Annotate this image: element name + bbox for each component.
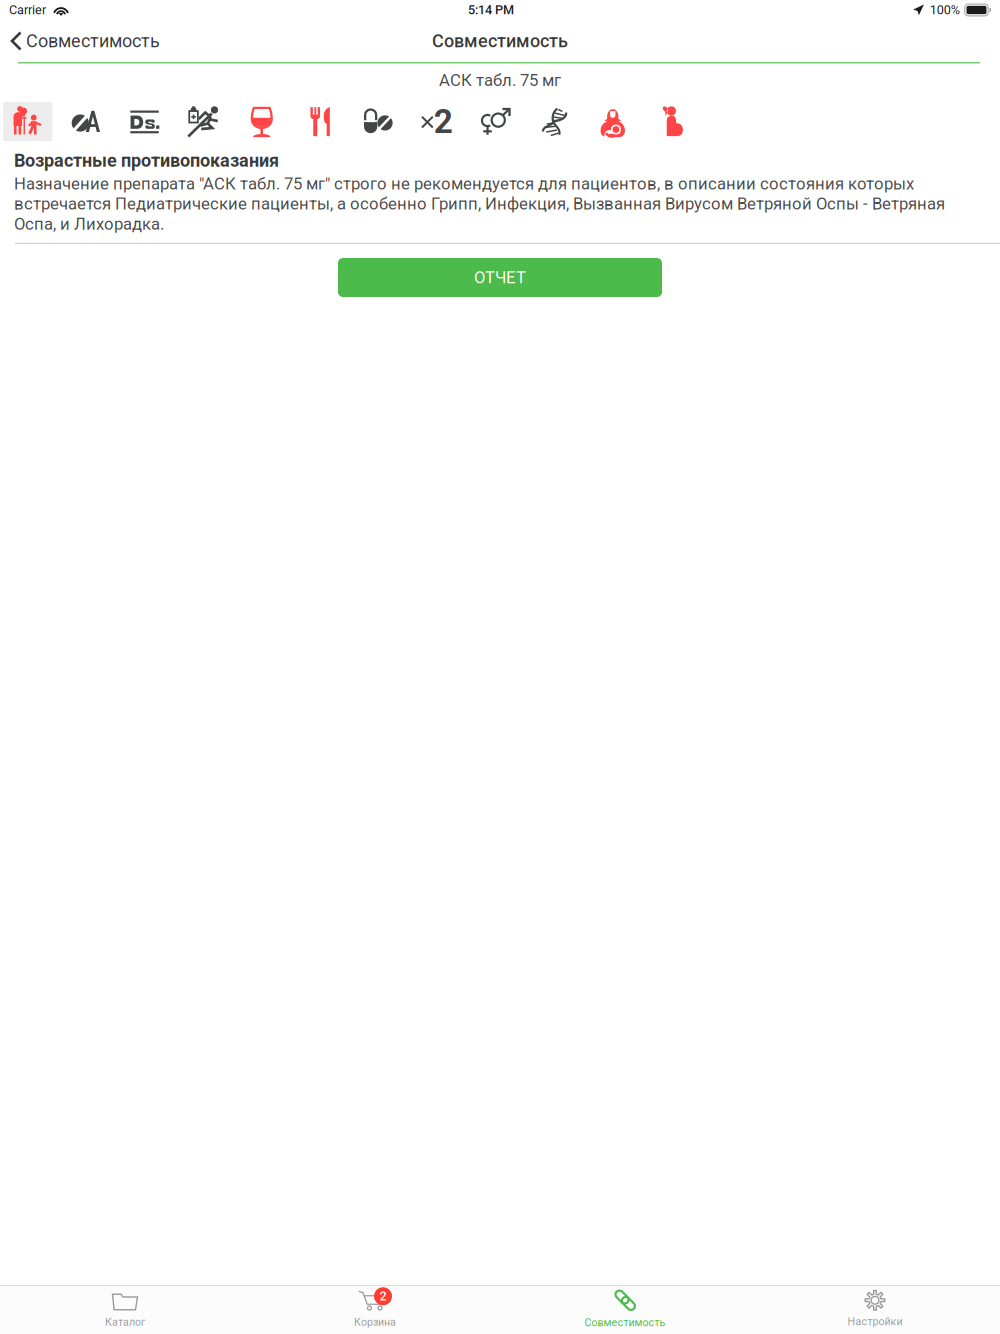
staticText: 100% <box>930 3 960 17</box>
button[interactable]: Каталог <box>0 1286 250 1334</box>
button[interactable]: Настройки <box>750 1286 1000 1334</box>
staticText: Настройки <box>847 1315 902 1328</box>
staticText: 2 <box>379 1289 386 1304</box>
staticText: Каталог <box>105 1316 145 1328</box>
button[interactable]: Возрастные противопоказания <box>0 102 58 141</box>
staticText: ОТЧЕТ <box>474 268 526 287</box>
button[interactable]: Кормление грудью <box>585 102 643 141</box>
button[interactable]: 2 <box>250 1286 500 1334</box>
staticText: 5:14 PM <box>468 3 514 17</box>
button[interactable]: Совместимость <box>500 1286 750 1334</box>
button[interactable]: Пол <box>468 102 526 141</box>
button[interactable]: Взаимодействия <box>351 102 409 141</box>
staticText: Совместимость <box>584 1316 665 1329</box>
button[interactable]: Совместимость <box>0 25 168 57</box>
button[interactable]: Генетика <box>526 102 585 141</box>
staticText: Совместимость <box>432 30 568 52</box>
button[interactable]: Алкоголь <box>234 102 292 141</box>
button[interactable]: Спорт <box>175 102 234 141</box>
button[interactable]: Вождение <box>58 102 117 141</box>
staticText: АСК табл. 75 мг <box>439 70 561 90</box>
staticText: Совместимость <box>26 30 160 52</box>
button[interactable]: Приём пищи <box>292 102 351 141</box>
staticText: 2 <box>434 102 453 141</box>
button[interactable]: Беременность <box>643 102 702 141</box>
staticText: Возрастные противопоказания <box>14 150 279 171</box>
staticText: Назначение препарата "АСК табл. 75 мг" с… <box>14 174 945 234</box>
staticText: Carrier <box>9 3 46 17</box>
staticText: Корзина <box>354 1316 396 1328</box>
button[interactable]: Дозировка <box>117 102 175 141</box>
button[interactable]: ОТЧЕТ <box>338 258 662 297</box>
button[interactable]: Дублирование <box>409 102 468 141</box>
